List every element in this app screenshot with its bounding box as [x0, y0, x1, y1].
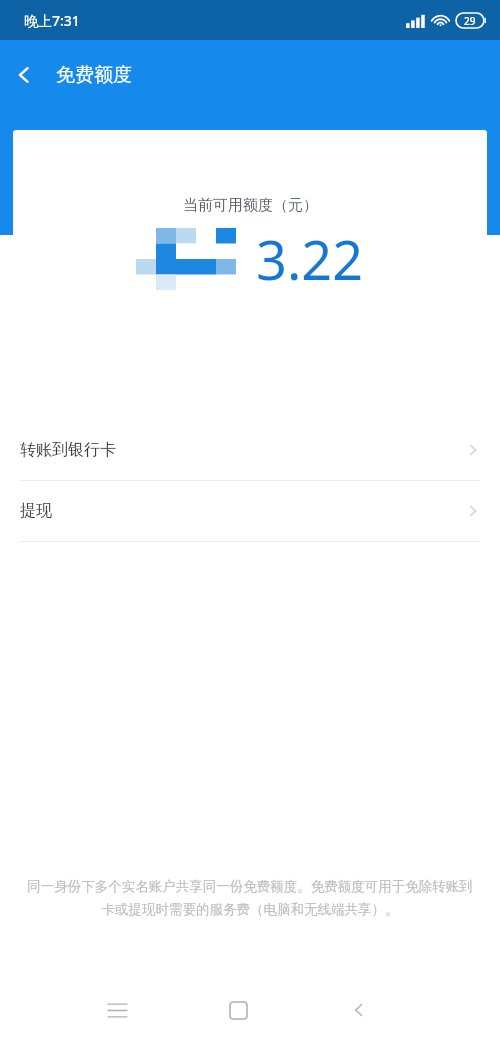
button[interactable]: 返回	[335, 986, 383, 1034]
staticText: 晚上7:31	[24, 11, 80, 30]
staticText: 3.22	[256, 222, 364, 296]
button[interactable]: 最近任务	[93, 986, 141, 1034]
staticText: 同一身份下多个实名账户共享同一份免费额度。免费额度可用于免除转账到卡或提现时需要…	[26, 878, 474, 918]
button[interactable]: 转账到银行卡	[0, 420, 500, 480]
button[interactable]: 提现	[0, 481, 500, 541]
staticText: 提现	[20, 501, 52, 521]
staticText: 免费额度	[56, 63, 132, 87]
staticText: 转账到银行卡	[20, 440, 116, 460]
staticText: 29	[464, 14, 476, 28]
button[interactable]: 主页	[214, 986, 262, 1034]
staticText: 当前可用额度（元）	[183, 196, 318, 215]
button[interactable]: 返回	[0, 51, 48, 99]
